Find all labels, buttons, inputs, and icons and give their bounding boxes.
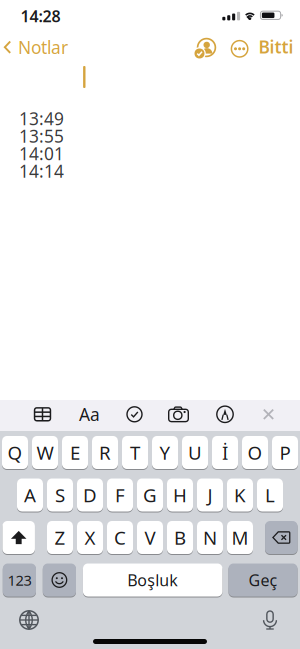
button[interactable]: Paylaş: [194, 37, 219, 60]
staticText: J: [207, 483, 212, 507]
staticText: X: [84, 525, 95, 550]
button[interactable]: Yapılacaklar: [126, 406, 143, 423]
button[interactable]: Klavye Değiştir: [19, 610, 39, 630]
button[interactable]: R: [92, 436, 118, 469]
button[interactable]: J: [197, 478, 223, 511]
staticText: 123: [7, 570, 31, 590]
button[interactable]: O: [242, 436, 268, 469]
button[interactable]: H: [167, 478, 193, 511]
staticText: O: [247, 440, 262, 465]
button[interactable]: Z: [47, 521, 73, 554]
staticText: C: [114, 525, 126, 550]
button[interactable]: V: [137, 521, 163, 554]
button[interactable]: D: [77, 478, 103, 511]
button[interactable]: 123: [3, 563, 36, 596]
staticText: 14:14: [19, 159, 64, 182]
staticText: K: [234, 483, 246, 507]
staticText: İ: [222, 440, 228, 465]
staticText: D: [83, 483, 97, 507]
button[interactable]: K: [227, 478, 253, 511]
button[interactable]: Dikte: [262, 610, 278, 630]
staticText: E: [70, 440, 80, 465]
staticText: Bitti: [258, 35, 293, 58]
button[interactable]: M: [227, 521, 253, 554]
button[interactable]: C: [107, 521, 133, 554]
staticText: G: [143, 483, 157, 507]
staticText: Notlar: [18, 36, 68, 59]
staticText: 14:01: [19, 142, 64, 165]
staticText: T: [130, 440, 140, 465]
button[interactable]: X: [77, 521, 103, 554]
button[interactable]: U: [182, 436, 208, 469]
staticText: W: [36, 440, 53, 465]
staticText: 13:49: [19, 107, 64, 130]
button[interactable]: W: [32, 436, 58, 469]
staticText: Q: [7, 440, 22, 465]
staticText: 13:55: [19, 124, 64, 147]
button[interactable]: N: [197, 521, 223, 554]
button[interactable]: Shift: [2, 521, 35, 554]
button[interactable]: Biçim: [79, 403, 100, 426]
button[interactable]: S: [47, 478, 73, 511]
button[interactable]: İ: [212, 436, 238, 469]
staticText: M: [231, 525, 248, 550]
staticText: Y: [159, 440, 170, 465]
staticText: 14:28: [20, 5, 60, 27]
staticText: A: [24, 483, 36, 507]
staticText: B: [174, 525, 186, 550]
staticText: L: [265, 483, 275, 507]
button[interactable]: Kamera: [168, 406, 189, 422]
button[interactable]: Boşluk: [83, 563, 222, 596]
button[interactable]: A: [17, 478, 43, 511]
staticText: N: [203, 525, 217, 550]
staticText: U: [188, 440, 202, 465]
button[interactable]: Notlar: [4, 36, 68, 59]
staticText: H: [173, 483, 187, 507]
button[interactable]: İşaretleme: [216, 405, 234, 423]
staticText: R: [99, 440, 111, 465]
button[interactable]: Bitti: [258, 35, 293, 58]
button[interactable]: Y: [152, 436, 178, 469]
staticText: F: [115, 483, 125, 507]
button[interactable]: Emoji: [43, 563, 76, 596]
button[interactable]: F: [107, 478, 133, 511]
staticText: Z: [54, 525, 65, 550]
button[interactable]: Q: [2, 436, 28, 469]
button[interactable]: G: [137, 478, 163, 511]
staticText: Geç: [248, 569, 277, 591]
button[interactable]: B: [167, 521, 193, 554]
staticText: P: [279, 440, 290, 465]
button[interactable]: Tablo: [34, 407, 51, 422]
button[interactable]: L: [257, 478, 283, 511]
staticText: Aa: [79, 403, 100, 426]
staticText: S: [55, 483, 65, 507]
button[interactable]: Sil: [265, 521, 298, 554]
button[interactable]: Geç: [228, 563, 297, 596]
button[interactable]: Kapat: [263, 409, 274, 420]
button[interactable]: P: [272, 436, 298, 469]
button[interactable]: E: [62, 436, 88, 469]
staticText: Boşluk: [127, 569, 178, 591]
button[interactable]: T: [122, 436, 148, 469]
button[interactable]: Daha Fazla: [231, 40, 249, 58]
staticText: V: [144, 525, 155, 550]
